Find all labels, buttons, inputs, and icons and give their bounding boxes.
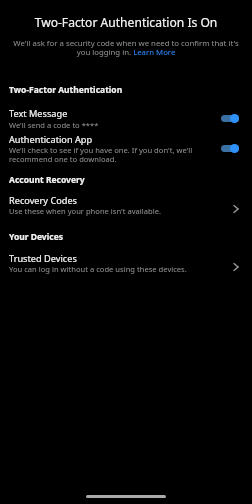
staticText: We'll check to see if you have one. If y… [9, 145, 214, 164]
staticText: Text Message [9, 107, 68, 120]
button[interactable]: Authentication App [0, 130, 252, 165]
staticText: You can log in without a code using thes… [9, 264, 214, 274]
button[interactable]: Text Message [0, 103, 252, 129]
button[interactable]: Recovery Codes [0, 190, 252, 216]
staticText: Use these when your phone isn't availabl… [9, 206, 209, 216]
staticText: We'll ask for a security code when we ne… [11, 38, 241, 57]
staticText: Recovery Codes [9, 194, 77, 207]
staticText: Trusted Devices [9, 252, 77, 265]
button[interactable]: Text message two-factor authentication, … [221, 112, 239, 124]
button[interactable]: Trusted Devices [0, 248, 252, 274]
button[interactable]: Authentication app two-factor authentica… [221, 142, 239, 154]
staticText: Two-Factor Authentication Is On [8, 14, 244, 30]
staticText: Authentication App [9, 133, 93, 146]
staticText: Two-Factor Authentication [9, 84, 123, 96]
other: Open recovery codes [229, 202, 243, 216]
other: Open trusted devices [229, 260, 243, 274]
staticText: Your Devices [9, 231, 63, 243]
staticText: We'll send a code to **** [9, 120, 209, 130]
button[interactable]: We'll ask for a security code when we ne… [0, 38, 252, 59]
staticText: Account Recovery [9, 174, 85, 186]
